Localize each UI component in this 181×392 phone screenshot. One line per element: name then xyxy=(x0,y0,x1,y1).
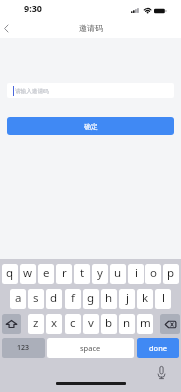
staticText: b xyxy=(105,315,113,331)
staticText: q xyxy=(6,265,14,281)
staticText: l xyxy=(162,290,165,306)
button[interactable]: j xyxy=(119,289,135,309)
staticText: e xyxy=(43,265,50,281)
staticText: 9:30 xyxy=(24,2,42,14)
button[interactable]: Backspace xyxy=(160,314,180,334)
staticText: d xyxy=(50,290,58,306)
staticText: 请输入邀请码 xyxy=(15,88,49,95)
button[interactable]: h xyxy=(101,289,117,309)
button[interactable]: b xyxy=(101,314,117,334)
button[interactable]: g xyxy=(83,289,99,309)
staticText: s xyxy=(33,290,39,306)
button[interactable]: q xyxy=(2,264,18,284)
staticText: 邀请码 xyxy=(79,23,103,33)
staticText: u xyxy=(114,265,122,281)
button[interactable]: 123 xyxy=(2,338,45,358)
button[interactable]: l xyxy=(155,289,171,309)
staticText: t xyxy=(80,265,85,281)
staticText: j xyxy=(126,290,129,306)
button[interactable]: p xyxy=(163,264,179,284)
staticText: i xyxy=(135,265,138,281)
button[interactable]: r xyxy=(56,264,72,284)
button[interactable]: a xyxy=(10,289,26,309)
staticText: k xyxy=(142,290,149,306)
button[interactable]: u xyxy=(110,264,126,284)
button[interactable]: k xyxy=(137,289,153,309)
staticText: o xyxy=(150,265,157,281)
staticText: z xyxy=(33,315,39,331)
staticText: g xyxy=(87,290,95,306)
button[interactable]: Dictation xyxy=(154,365,169,380)
button[interactable]: y xyxy=(92,264,108,284)
staticText: y xyxy=(97,265,103,281)
button[interactable]: done xyxy=(137,338,179,358)
staticText: p xyxy=(167,265,175,281)
button[interactable]: 确定 xyxy=(7,117,174,135)
staticText: n xyxy=(123,315,131,331)
staticText: r xyxy=(62,265,67,281)
button[interactable]: Back xyxy=(0,20,17,37)
button[interactable]: s xyxy=(28,289,44,309)
staticText: f xyxy=(71,290,75,306)
staticText: w xyxy=(23,265,33,281)
staticText: a xyxy=(15,290,22,306)
staticText: 确定 xyxy=(84,122,98,131)
button[interactable]: w xyxy=(20,264,36,284)
button[interactable]: t xyxy=(74,264,90,284)
button[interactable]: x xyxy=(46,314,62,334)
button[interactable]: v xyxy=(83,314,99,334)
button[interactable]: f xyxy=(65,289,81,309)
staticText: 123 xyxy=(17,343,30,353)
staticText: v xyxy=(88,315,94,331)
button[interactable]: n xyxy=(119,314,135,334)
button[interactable]: c xyxy=(65,314,81,334)
button[interactable]: Shift xyxy=(2,314,21,334)
button[interactable]: i xyxy=(128,264,144,284)
button[interactable]: d xyxy=(46,289,62,309)
button[interactable]: 请输入邀请码 xyxy=(7,83,174,98)
staticText: m xyxy=(140,315,151,331)
staticText: space xyxy=(80,343,101,353)
staticText: h xyxy=(105,290,113,306)
button[interactable]: z xyxy=(28,314,44,334)
staticText: x xyxy=(51,315,58,331)
button[interactable]: space xyxy=(47,338,134,358)
button[interactable]: m xyxy=(137,314,153,334)
staticText: c xyxy=(70,315,76,331)
button[interactable]: o xyxy=(145,264,161,284)
button[interactable]: e xyxy=(38,264,54,284)
staticText: done xyxy=(149,343,168,353)
